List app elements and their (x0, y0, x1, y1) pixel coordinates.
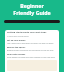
staticText: Explore the library (7, 46, 26, 49)
button[interactable] (4, 20, 60, 23)
staticText: A short intro to the basics (7, 35, 29, 37)
staticText: Add a photo and a few details so others … (7, 42, 54, 44)
staticText: Share with friends (7, 53, 26, 56)
staticText: Beginner (0, 2, 64, 9)
staticText: Invite people you know and learn togethe… (7, 56, 56, 58)
staticText: Getting started with your first steps (7, 31, 47, 34)
staticText: Browse curated collections and save what… (7, 49, 54, 51)
staticText: Set up your profile (7, 39, 26, 42)
staticText: Friendly Guide (0, 9, 64, 16)
